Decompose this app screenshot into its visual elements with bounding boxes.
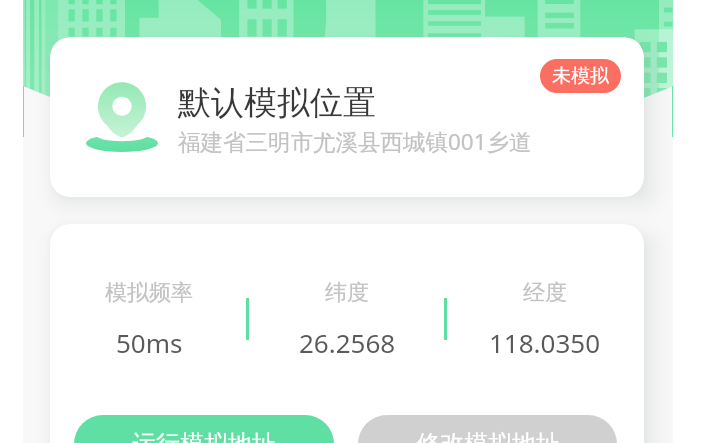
staticText: 118.0350 [489,325,601,360]
staticText: 50ms [116,325,183,360]
button[interactable]: 修改模拟地址 [358,415,617,443]
staticText: 修改模拟地址 [416,429,560,443]
staticText: 默认模拟位置 [178,82,376,124]
staticText: 经度 [523,279,567,307]
staticText: 26.2568 [299,325,396,360]
staticText: 模拟频率 [105,279,193,307]
staticText: 运行模拟地址 [132,429,276,443]
staticText: 纬度 [325,279,369,307]
button[interactable]: 未模拟 [540,59,621,93]
staticText: 福建省三明市尤溪县西城镇001乡道 [178,126,532,157]
button[interactable]: 运行模拟地址 [74,415,334,443]
staticText: 未模拟 [552,64,609,88]
